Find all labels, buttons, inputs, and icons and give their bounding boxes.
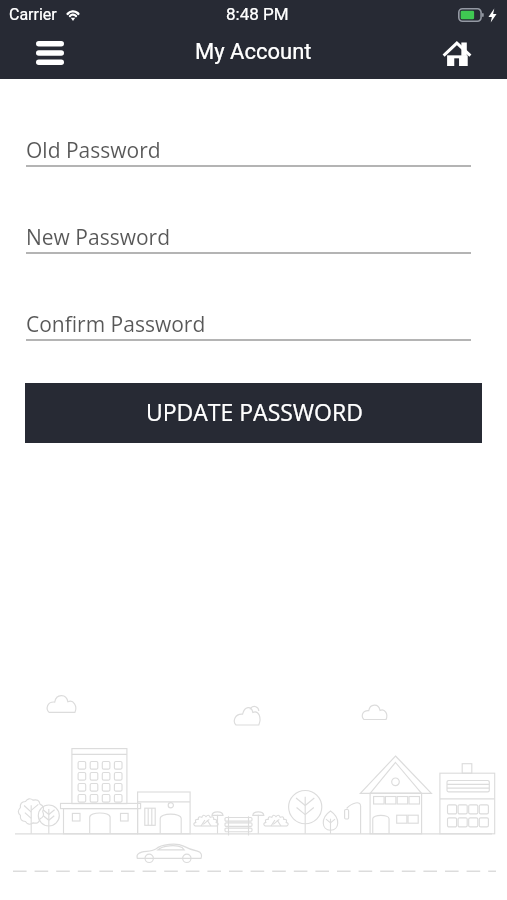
button[interactable]: New Password	[26, 167, 471, 254]
staticText: New Password	[26, 223, 170, 252]
staticText: My Account	[195, 39, 312, 65]
button[interactable]: Home	[438, 28, 506, 79]
staticText: Confirm Password	[26, 310, 206, 339]
button[interactable]: Open navigation menu	[18, 28, 82, 79]
button[interactable]: Confirm Password	[26, 254, 471, 341]
staticText: 8:48 PM	[226, 4, 289, 24]
staticText: UPDATE PASSWORD	[146, 396, 363, 427]
staticText: Carrier	[9, 5, 57, 24]
button[interactable]: Old Password	[26, 79, 471, 167]
staticText: Old Password	[26, 136, 161, 165]
button[interactable]: UPDATE PASSWORD	[25, 383, 482, 443]
